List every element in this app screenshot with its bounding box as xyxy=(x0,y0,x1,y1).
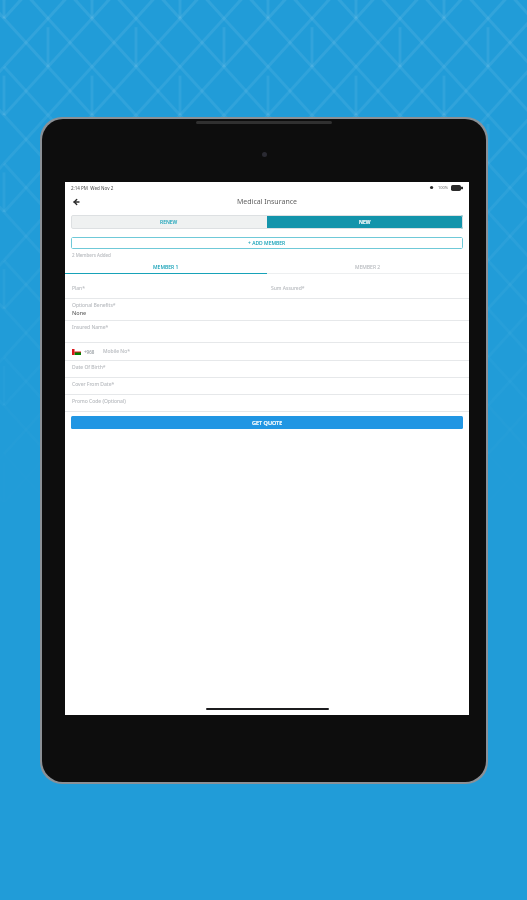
staticText: 2:14 PM Wed Nov 2 xyxy=(71,185,114,191)
staticText: RENEW xyxy=(160,219,178,226)
button[interactable]: Optional Benefits* xyxy=(65,299,469,321)
button[interactable]: RENEW xyxy=(71,215,267,229)
staticText: MEMBER 2 xyxy=(355,264,381,271)
button[interactable]: Date Of Birth* xyxy=(65,361,469,378)
staticText: Cover From Date* xyxy=(72,381,115,388)
button[interactable]: +968 xyxy=(65,343,469,361)
staticText: Medical Insurance xyxy=(237,197,298,207)
button[interactable]: Promo Code (Optional) xyxy=(65,395,469,412)
staticText: Mobile No* xyxy=(103,348,130,355)
button[interactable]: Back xyxy=(69,195,83,209)
staticText: Insured Name* xyxy=(72,324,109,331)
staticText: Promo Code (Optional) xyxy=(72,398,126,405)
staticText: + ADD MEMBER xyxy=(248,240,286,247)
button[interactable]: NEW xyxy=(267,215,463,229)
staticText: MEMBER 1 xyxy=(153,264,179,271)
staticText: Date Of Birth* xyxy=(72,364,106,371)
staticText: None xyxy=(72,309,87,316)
staticText: 2 Members Added xyxy=(72,252,111,258)
staticText: +968 xyxy=(84,349,95,355)
button[interactable]: + ADD MEMBER xyxy=(71,237,463,249)
button[interactable]: GET QUOTE xyxy=(71,416,463,429)
button[interactable]: Plan* xyxy=(65,282,469,298)
staticText: Sum Assured* xyxy=(271,285,305,292)
button[interactable]: MEMBER 1 xyxy=(65,261,267,273)
staticText: GET QUOTE xyxy=(252,419,283,426)
button[interactable]: Insured Name* xyxy=(65,321,469,343)
staticText: 100% xyxy=(438,185,449,190)
button[interactable]: MEMBER 2 xyxy=(267,261,469,273)
staticText: Plan* xyxy=(72,285,85,292)
staticText: Optional Benefits* xyxy=(72,302,116,309)
staticText: NEW xyxy=(359,219,371,226)
button[interactable]: Cover From Date* xyxy=(65,378,469,395)
